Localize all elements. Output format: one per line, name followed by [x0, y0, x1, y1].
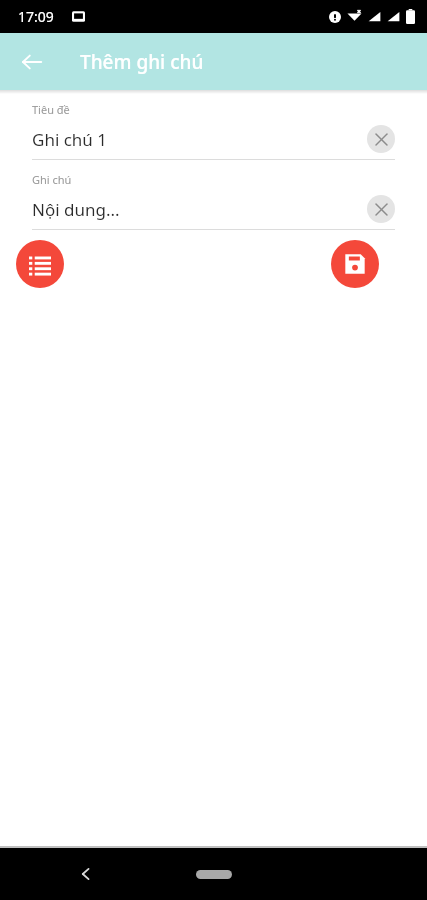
button[interactable]: Save	[331, 240, 379, 288]
staticText: Ghi chú	[32, 172, 72, 187]
button[interactable]: Home	[190, 856, 238, 892]
button[interactable]: Clear Ghi chú	[367, 195, 395, 223]
button[interactable]: Back	[68, 856, 104, 892]
staticText: 17:09	[18, 7, 54, 26]
button[interactable]: Back	[12, 42, 52, 82]
staticText: Nội dung...	[32, 198, 120, 221]
button[interactable]: List	[16, 240, 64, 288]
button[interactable]: Clear Tiêu đề	[367, 125, 395, 153]
staticText: Tiêu đề	[32, 102, 70, 117]
staticText: Ghi chú 1	[32, 128, 108, 151]
staticText: Thêm ghi chú	[80, 49, 204, 75]
